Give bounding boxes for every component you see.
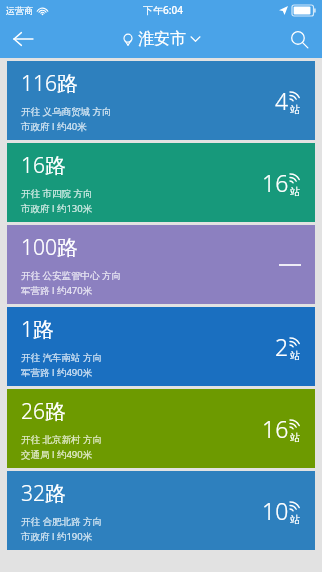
button[interactable]: Search — [276, 20, 322, 58]
staticText: 开往 义乌商贸城 方向 — [21, 105, 112, 118]
staticText: 开往 北京新村 方向 — [21, 433, 102, 446]
staticText: 站 — [290, 103, 300, 116]
button[interactable]: 16路 — [7, 143, 315, 222]
staticText: 军营路 l 约470米 — [21, 284, 93, 297]
button[interactable]: 100路 — [7, 225, 315, 304]
staticText: 开往 公安监管中心 方向 — [21, 269, 121, 282]
staticText: 16 — [262, 167, 289, 198]
button[interactable]: Back — [0, 20, 46, 58]
staticText: 市政府 l 约130米 — [21, 202, 93, 215]
staticText: 市政府 l 约40米 — [21, 120, 87, 133]
staticText: 站 — [290, 513, 300, 526]
button[interactable]: 1路 — [7, 307, 315, 386]
staticText: 2 — [275, 331, 289, 362]
staticText: 站 — [290, 431, 300, 444]
staticText: 26路 — [21, 397, 66, 426]
staticText: 运营商 — [6, 5, 33, 16]
button[interactable]: 32路 — [7, 471, 315, 550]
staticText: 站 — [290, 349, 300, 362]
staticText: 军营路 l 约490米 — [21, 366, 93, 379]
staticText: 开往 汽车南站 方向 — [21, 351, 102, 364]
staticText: 交通局 l 约490米 — [21, 448, 93, 461]
staticText: 开往 市四院 方向 — [21, 187, 93, 200]
staticText: 淮安市 — [138, 29, 186, 49]
button[interactable]: 26路 — [7, 389, 315, 468]
staticText: 16 — [262, 413, 289, 444]
staticText: 站 — [290, 185, 300, 198]
button[interactable]: 淮安市 — [117, 25, 206, 53]
staticText: 100路 — [21, 233, 78, 262]
staticText: 市政府 l 约190米 — [21, 530, 93, 543]
staticText: 1路 — [21, 315, 54, 344]
staticText: 4 — [275, 85, 289, 116]
staticText: 32路 — [21, 479, 66, 508]
staticText: 下午6:04 — [143, 3, 183, 17]
button[interactable]: 116路 — [7, 61, 315, 140]
staticText: 16路 — [21, 151, 66, 180]
staticText: 10 — [262, 495, 289, 526]
staticText: 116路 — [21, 69, 78, 98]
staticText: 开往 合肥北路 方向 — [21, 515, 102, 528]
